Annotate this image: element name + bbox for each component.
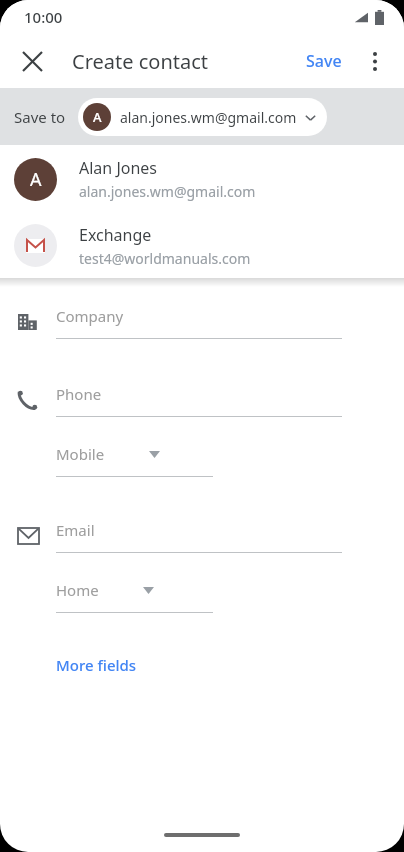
staticText: alan.jones.wm@gmail.com: [120, 108, 297, 127]
staticText: Home: [56, 580, 99, 600]
staticText: More fields: [56, 655, 137, 675]
button[interactable]: Company: [0, 291, 404, 353]
staticText: Phone: [56, 384, 102, 404]
button[interactable]: More fields: [42, 647, 151, 683]
staticText: Surname: [56, 227, 120, 247]
staticText: 10:00: [24, 7, 63, 27]
button[interactable]: Close: [8, 37, 56, 85]
button[interactable]: Exchange: [0, 213, 404, 278]
staticText: A: [30, 167, 42, 192]
staticText: Exchange: [79, 224, 152, 246]
staticText: Email: [56, 520, 95, 540]
button[interactable]: Mobile: [0, 431, 404, 489]
staticText: Save to: [14, 107, 66, 127]
staticText: alan.jones.wm@gmail.com: [79, 182, 256, 201]
button[interactable]: Phone: [0, 369, 404, 431]
button[interactable]: A: [78, 98, 327, 136]
button[interactable]: Surname: [0, 213, 404, 275]
button[interactable]: Email: [0, 505, 404, 567]
button[interactable]: More options: [352, 38, 398, 84]
button[interactable]: A: [0, 145, 404, 213]
staticText: Create contact: [72, 48, 209, 75]
staticText: Save: [306, 50, 342, 72]
staticText: Mobile: [56, 444, 105, 464]
staticText: Alan Jones: [79, 157, 158, 179]
staticText: test4@worldmanuals.com: [79, 249, 251, 268]
staticText: First name: [56, 166, 131, 186]
staticText: Company: [56, 306, 124, 326]
button[interactable]: Home: [0, 567, 404, 625]
staticText: A: [93, 108, 102, 126]
button[interactable]: Save: [296, 42, 352, 80]
